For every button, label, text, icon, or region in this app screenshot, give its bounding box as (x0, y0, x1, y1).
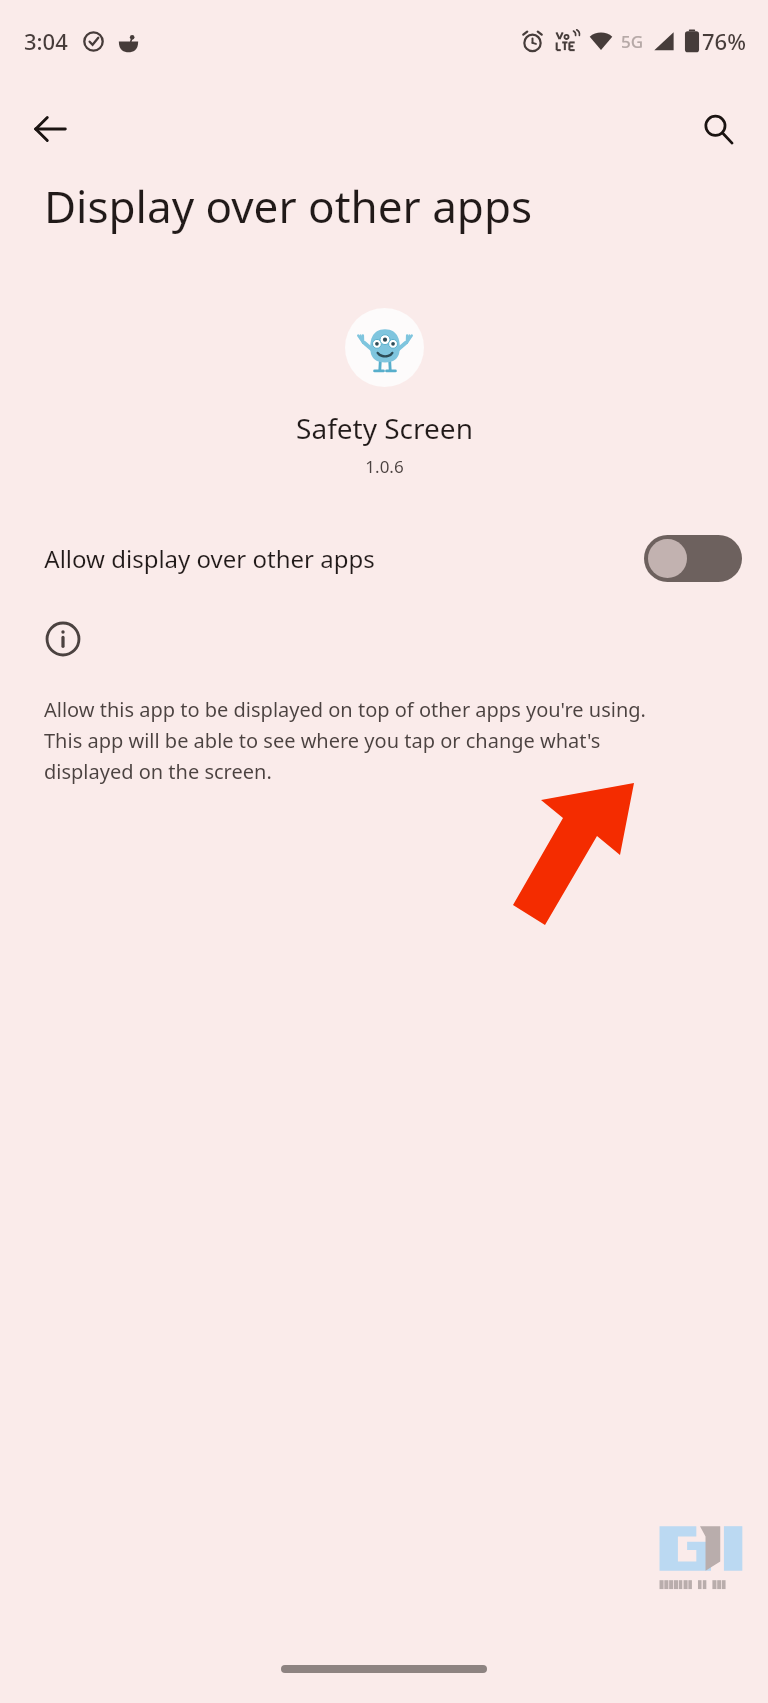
other: Information (44, 620, 82, 658)
staticText: 3:04 (24, 26, 68, 56)
staticText: Safety Screen (296, 409, 473, 447)
button[interactable]: Allow display over other apps (0, 524, 768, 592)
staticText: 1.0.6 (365, 455, 404, 478)
button[interactable]: Back (22, 101, 78, 157)
staticText: 5G (621, 30, 644, 53)
staticText: Allow display over other apps (44, 542, 375, 575)
staticText: 76% (702, 26, 746, 56)
staticText: Allow this app to be displayed on top of… (44, 696, 674, 785)
button[interactable]: Allow display over other apps toggle (644, 535, 742, 582)
staticText: Display over other apps (44, 176, 604, 236)
button[interactable]: Search (690, 101, 746, 157)
